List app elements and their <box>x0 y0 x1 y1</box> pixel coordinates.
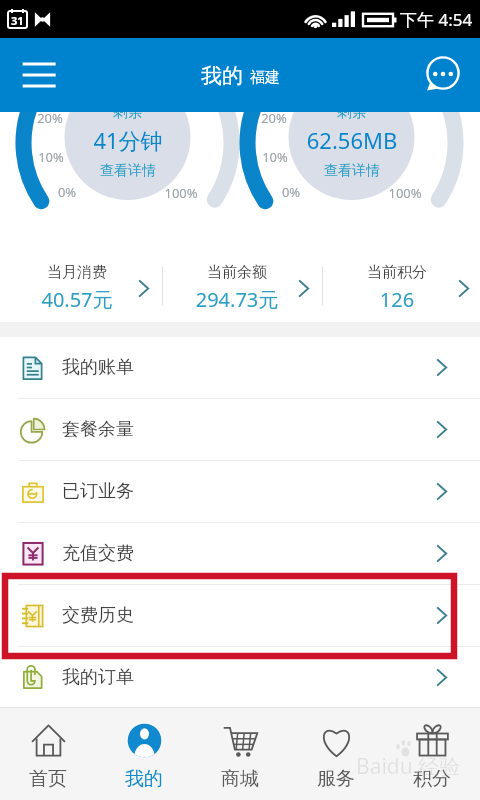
staticText: 10% <box>253 148 297 166</box>
button[interactable]: 当前余额 <box>160 252 321 320</box>
button[interactable]: 我的账单 <box>0 337 480 398</box>
button[interactable]: 当月消费 <box>0 252 161 320</box>
staticText: 40.57元 <box>9 286 145 313</box>
button[interactable]: 62.56MB <box>272 123 432 157</box>
staticText: 商城 <box>221 767 259 791</box>
staticText: 查看详情 <box>48 162 208 180</box>
button[interactable]: 我的订单 <box>0 647 480 707</box>
button[interactable]: 服务 <box>288 707 384 800</box>
staticText: 0% <box>45 183 89 201</box>
staticText: 已订业务 <box>62 480 134 503</box>
button[interactable]: 我的 <box>96 707 192 800</box>
button[interactable]: 商城 <box>192 707 288 800</box>
staticText: 41分钟 <box>48 125 208 155</box>
button[interactable]: Messages <box>421 51 465 95</box>
staticText: 当前余额 <box>169 263 305 282</box>
staticText: 套餐余量 <box>62 418 134 441</box>
staticText: 0% <box>269 183 313 201</box>
staticText: 20% <box>28 112 72 127</box>
staticText: 20% <box>252 112 296 127</box>
staticText: 100% <box>383 184 427 202</box>
staticText: 10% <box>29 148 73 166</box>
button[interactable]: Menu <box>10 47 66 103</box>
staticText: 我的账单 <box>62 356 134 379</box>
button[interactable]: 已订业务 <box>0 461 480 522</box>
staticText: 下午 4:54 <box>400 8 473 31</box>
staticText: 100% <box>159 184 203 202</box>
staticText: 294.73元 <box>169 286 305 313</box>
staticText: 服务 <box>317 767 355 791</box>
staticText: 我的 <box>201 63 243 89</box>
button[interactable]: 首页 <box>0 707 96 800</box>
staticText: 交费历史 <box>62 604 134 627</box>
button[interactable]: 41分钟 <box>48 123 208 157</box>
staticText: 我的订单 <box>62 666 134 689</box>
staticText: 当前积分 <box>329 263 465 282</box>
staticText: 首页 <box>29 767 67 791</box>
staticText: 积分 <box>413 767 451 791</box>
staticText: 126 <box>329 286 465 313</box>
staticText: 31 <box>11 13 24 28</box>
button[interactable]: 充值交费 <box>0 523 480 584</box>
button[interactable]: 交费历史 <box>0 585 480 646</box>
staticText: 当月消费 <box>9 263 145 282</box>
staticText: Baidu 经验 <box>356 752 461 781</box>
button[interactable]: 当前积分 <box>320 252 480 320</box>
staticText: 62.56MB <box>272 125 432 155</box>
staticText: 我的 <box>125 767 163 791</box>
staticText: 福建 <box>250 68 280 87</box>
button[interactable]: 套餐余量 <box>0 399 480 460</box>
button[interactable]: 积分 <box>384 707 480 800</box>
staticText: 充值交费 <box>62 542 134 565</box>
staticText: 剩余 <box>48 112 208 122</box>
staticText: 查看详情 <box>272 162 432 180</box>
staticText: 剩余 <box>272 112 432 122</box>
